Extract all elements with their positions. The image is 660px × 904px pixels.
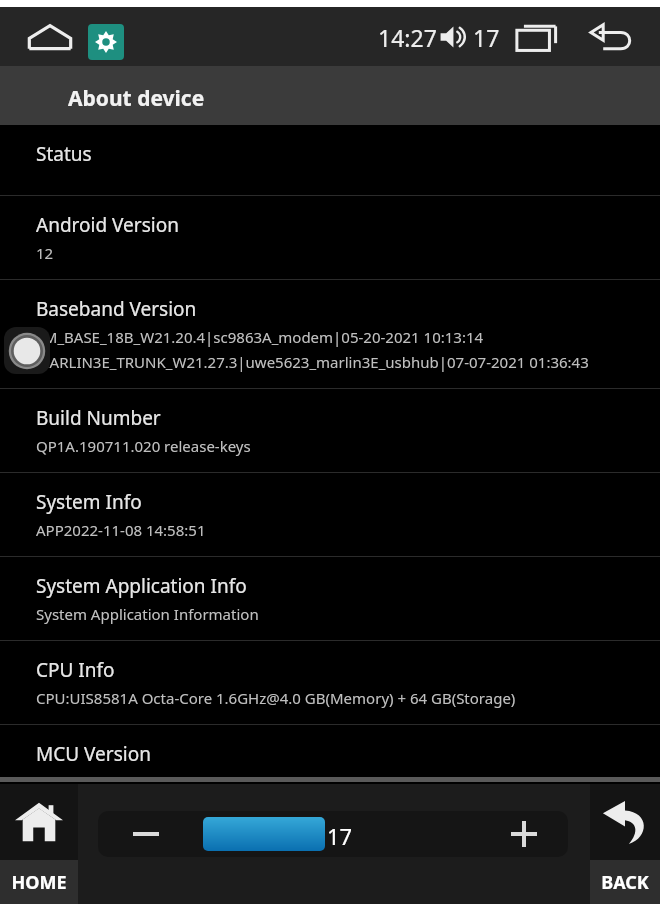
button[interactable]: System Info	[0, 473, 660, 556]
staticText: 17	[327, 821, 353, 851]
button[interactable]: System Application Info	[0, 557, 660, 640]
button[interactable]: Baseband Version	[0, 280, 660, 388]
staticText: HOME	[11, 870, 67, 895]
button[interactable]: Volume down	[118, 811, 174, 857]
staticText: About device	[68, 84, 205, 113]
button[interactable]: Bluetooth Version	[0, 809, 660, 892]
staticText: QP1A.190711.020 release-keys	[36, 436, 251, 456]
button[interactable]: Recent apps	[512, 19, 564, 55]
button[interactable]: Home	[22, 17, 78, 57]
staticText: APP2022-11-08 14:58:51	[36, 520, 206, 540]
staticText: 14:27	[378, 22, 437, 53]
button[interactable]	[203, 817, 325, 851]
staticText: Build Number	[36, 405, 161, 431]
staticText: CPU Info	[36, 657, 115, 683]
staticText: BACK	[601, 870, 649, 895]
staticText: FM_BASE_18B_W21.20.4|sc9863A_modem|05-20…	[36, 327, 484, 347]
button[interactable]: MCU Version	[0, 725, 660, 808]
button[interactable]: CPU Info	[0, 641, 660, 724]
button[interactable]: Home	[0, 784, 78, 904]
staticText: Status	[36, 141, 92, 167]
staticText: MARLIN3E_TRUNK_W21.27.3|uwe5623_marlin3E…	[36, 352, 589, 372]
staticText: Baseband Version	[36, 296, 197, 322]
staticText: System Application Information	[36, 604, 259, 624]
staticText: CPU:UIS8581A Octa-Core 1.6GHz@4.0 GB(Mem…	[36, 688, 516, 708]
button[interactable]: Back	[586, 19, 638, 55]
staticText: System Info	[36, 489, 142, 515]
staticText: Bluetooth Version	[36, 825, 196, 851]
button[interactable]: Back	[590, 784, 660, 904]
staticText: 12	[36, 243, 54, 263]
button[interactable]: Status	[0, 125, 660, 195]
staticText: 2022.11.02 10:49:56 NOR_53_L6315_N32P48F…	[36, 772, 476, 792]
button[interactable]: Android Version	[0, 196, 660, 279]
button[interactable]: Settings	[88, 24, 124, 60]
button[interactable]: Volume up	[496, 811, 552, 857]
staticText: 17	[473, 22, 500, 53]
staticText: MCU Version	[36, 741, 151, 767]
staticText: Android Version	[36, 212, 179, 238]
staticText: System Application Info	[36, 573, 247, 599]
button[interactable]: Build Number	[0, 389, 660, 472]
button[interactable]: Assistive touch	[4, 327, 50, 374]
staticText: 10-29_Built-in	[36, 856, 132, 876]
